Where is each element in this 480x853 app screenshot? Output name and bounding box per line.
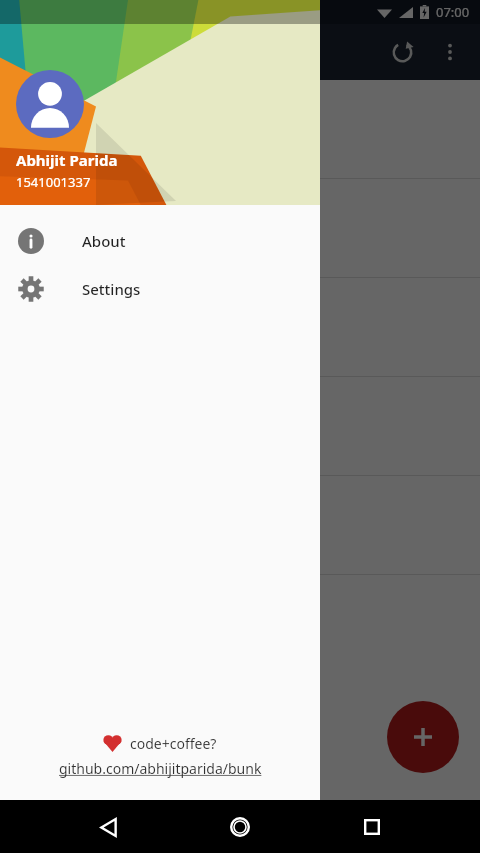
staticText: github.com/abhijitparida/bunk	[59, 759, 262, 778]
staticText: Abhijit Parida	[16, 150, 118, 170]
staticText: Settings	[82, 279, 141, 299]
staticText: CS	[16, 148, 32, 166]
staticText: Classes	[16, 122, 61, 140]
staticText: Communication and	[16, 189, 178, 211]
staticText: 1541001337	[16, 173, 91, 191]
staticText: Attendance	[16, 247, 86, 265]
staticText: Data Structures	[16, 90, 142, 112]
button[interactable]: Settings	[0, 265, 320, 313]
button[interactable]: Physics 1	[0, 476, 480, 575]
button[interactable]: github.com/abhijitparida/bunk	[59, 759, 262, 778]
staticText: code+coffee?	[130, 734, 217, 753]
button[interactable]: Computer Theory	[0, 377, 480, 476]
button[interactable]: About	[0, 217, 320, 265]
button[interactable]: Refresh	[378, 28, 426, 76]
button[interactable]: Home	[216, 803, 264, 851]
button[interactable]: More options	[426, 28, 474, 76]
staticText: Classes	[16, 221, 61, 239]
button[interactable]: Communication and	[0, 179, 480, 278]
button[interactable]: Data Structures	[0, 80, 480, 179]
button[interactable]: Add	[387, 701, 459, 773]
button[interactable]: Recents	[348, 803, 396, 851]
button[interactable]: Digital Design	[0, 278, 480, 377]
staticText: Digital Design	[16, 288, 128, 310]
staticText: 07:00	[436, 3, 470, 21]
button[interactable]: Back	[84, 803, 132, 851]
staticText: About	[82, 231, 126, 251]
